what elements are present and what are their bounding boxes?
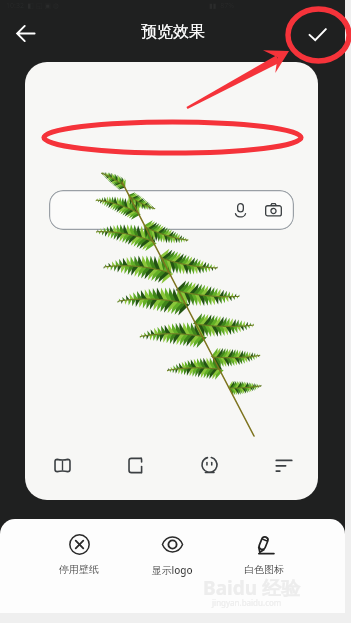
staticText: jingyan.baidu.com (212, 597, 282, 608)
button[interactable]: 语音搜索 (49, 190, 294, 230)
button[interactable]: 确认 (302, 19, 333, 50)
button[interactable]: 显示logo (140, 534, 204, 577)
button[interactable]: 返回 (10, 18, 41, 49)
button[interactable]: 扫描 (121, 450, 151, 480)
staticText: 预览效果 (141, 22, 205, 42)
button[interactable]: 语音搜索 (229, 199, 251, 221)
staticText: Baidu 经验 (203, 575, 300, 601)
staticText: 白色图标 (244, 563, 284, 576)
button[interactable]: 白色图标 (232, 534, 296, 576)
button[interactable]: 排序 (268, 450, 298, 480)
button[interactable]: 停用壁纸 (47, 534, 111, 576)
staticText: 停用壁纸 (59, 563, 99, 576)
staticText: 显示logo (151, 563, 193, 577)
button[interactable]: 图片搜索 (262, 199, 284, 221)
button[interactable]: 表情 (194, 450, 224, 480)
button[interactable]: 阅读模式 (47, 450, 77, 480)
